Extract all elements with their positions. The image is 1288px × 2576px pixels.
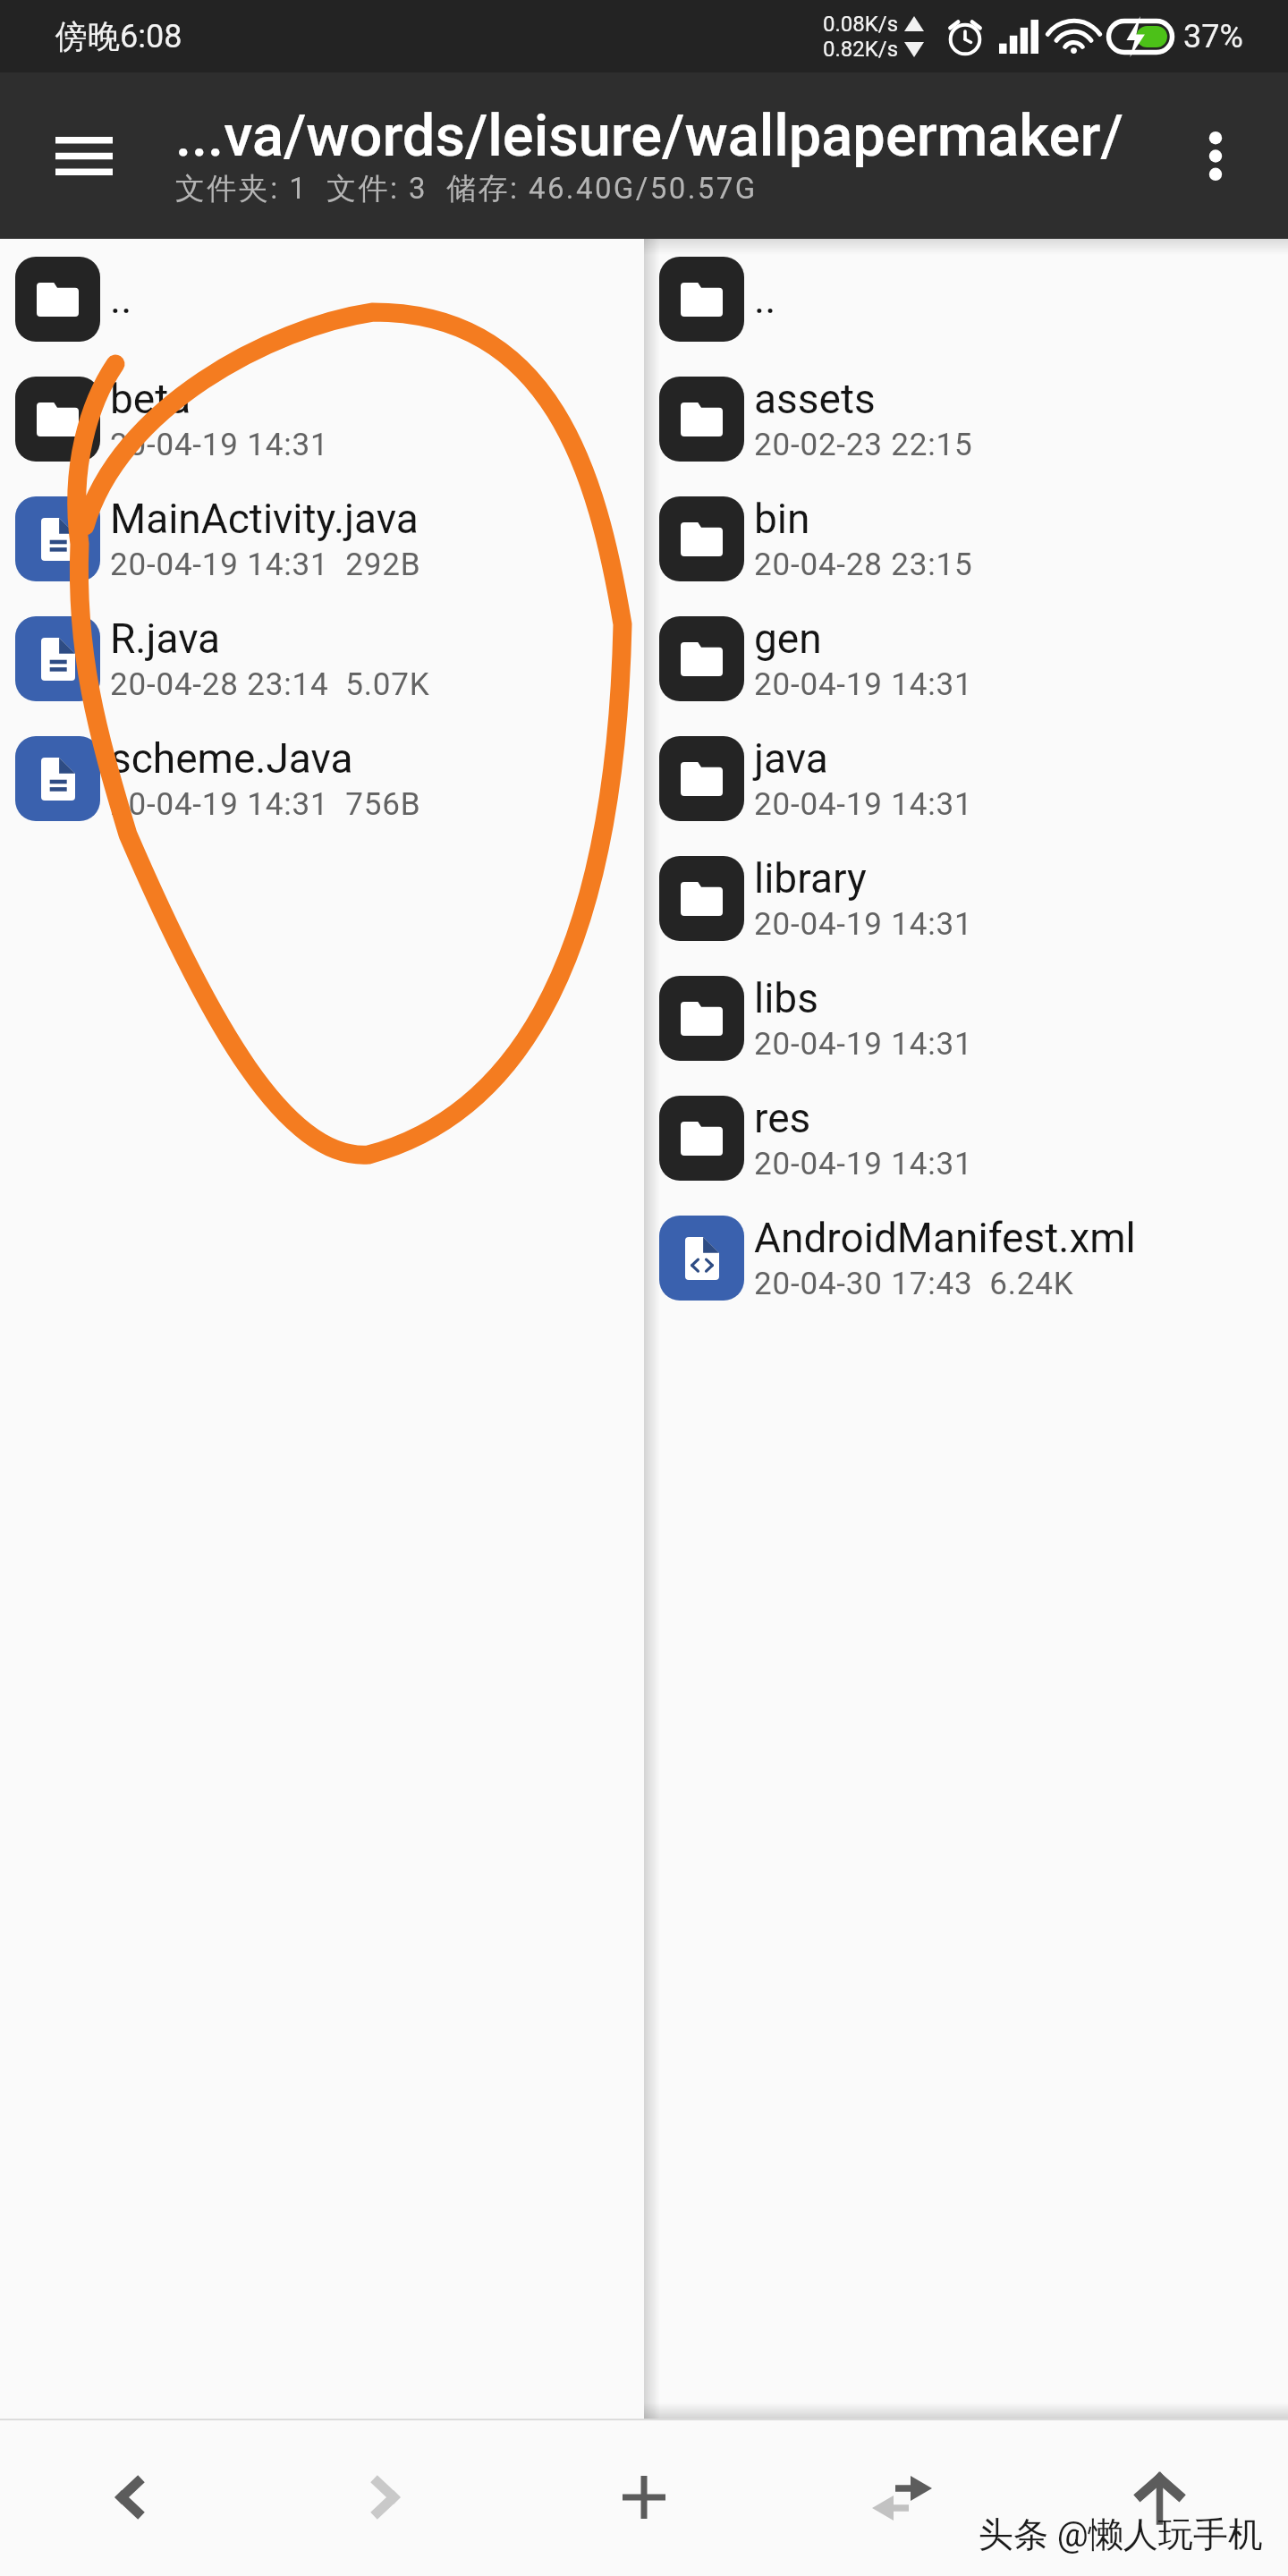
staticText: 20-04-30 17:43 6.24K	[754, 1266, 1074, 1302]
staticText: ..	[110, 275, 132, 323]
button[interactable]: java	[644, 718, 1288, 838]
button[interactable]: library	[644, 838, 1288, 958]
staticText: 20-04-19 14:31	[754, 1146, 973, 1182]
staticText: MainActivity.java	[110, 495, 419, 543]
staticText: java	[754, 734, 828, 783]
button[interactable]: R.java	[0, 598, 644, 718]
staticText: 20-04-19 14:31 756B	[110, 786, 421, 823]
staticText: 傍晚6:08	[55, 16, 182, 56]
button[interactable]: Forward	[258, 2419, 515, 2576]
staticText: AndroidManifest.xml	[754, 1214, 1136, 1262]
staticText: bin	[754, 495, 810, 543]
staticText: library	[754, 854, 867, 902]
staticText: 文件夹: 1 文件: 3 储存: 46.40G/50.57G	[175, 170, 758, 208]
staticText: libs	[754, 974, 818, 1022]
staticText: 20-02-23 22:15	[754, 427, 973, 463]
button[interactable]: libs	[644, 958, 1288, 1078]
staticText: 20-04-19 14:31 292B	[110, 547, 421, 583]
button[interactable]: assets	[644, 359, 1288, 479]
button[interactable]: bin	[644, 479, 1288, 598]
button[interactable]: More options	[1143, 72, 1288, 239]
staticText: 20-04-19 14:31	[110, 427, 329, 463]
staticText: 20-04-19 14:31	[754, 666, 973, 703]
staticText: beta	[110, 375, 191, 423]
staticText: ..	[754, 275, 776, 323]
staticText: 20-04-19 14:31	[754, 786, 973, 823]
button[interactable]: ..	[644, 239, 1288, 359]
staticText: 20-04-19 14:31	[754, 906, 973, 943]
button[interactable]: ..	[0, 239, 644, 359]
button[interactable]: scheme.Java	[0, 718, 644, 838]
staticText: gen	[754, 614, 822, 663]
button[interactable]: MainActivity.java	[0, 479, 644, 598]
button[interactable]: Menu	[0, 72, 168, 239]
button[interactable]: New item	[515, 2419, 773, 2576]
button[interactable]: Up one level	[1030, 2419, 1288, 2576]
staticText: 20-04-19 14:31	[754, 1026, 973, 1063]
staticText: 20-04-28 23:14 5.07K	[110, 666, 430, 703]
button[interactable]: AndroidManifest.xml	[644, 1198, 1288, 1318]
staticText: 头条 @懒人玩手机	[979, 2512, 1263, 2556]
button[interactable]: gen	[644, 598, 1288, 718]
button[interactable]: beta	[0, 359, 644, 479]
staticText: assets	[754, 375, 876, 423]
staticText: ...va/words/leisure/wallpapermaker/	[175, 102, 1123, 170]
staticText: 20-04-28 23:15	[754, 547, 973, 583]
staticText: 0.82K/s	[823, 37, 899, 62]
staticText: res	[754, 1094, 811, 1142]
staticText: scheme.Java	[110, 734, 353, 783]
staticText: 37%	[1183, 18, 1243, 55]
button[interactable]: Back	[0, 2419, 258, 2576]
staticText: R.java	[110, 614, 221, 663]
button[interactable]: res	[644, 1078, 1288, 1198]
button[interactable]: Swap panes	[773, 2419, 1030, 2576]
staticText: 0.08K/s	[823, 12, 899, 37]
